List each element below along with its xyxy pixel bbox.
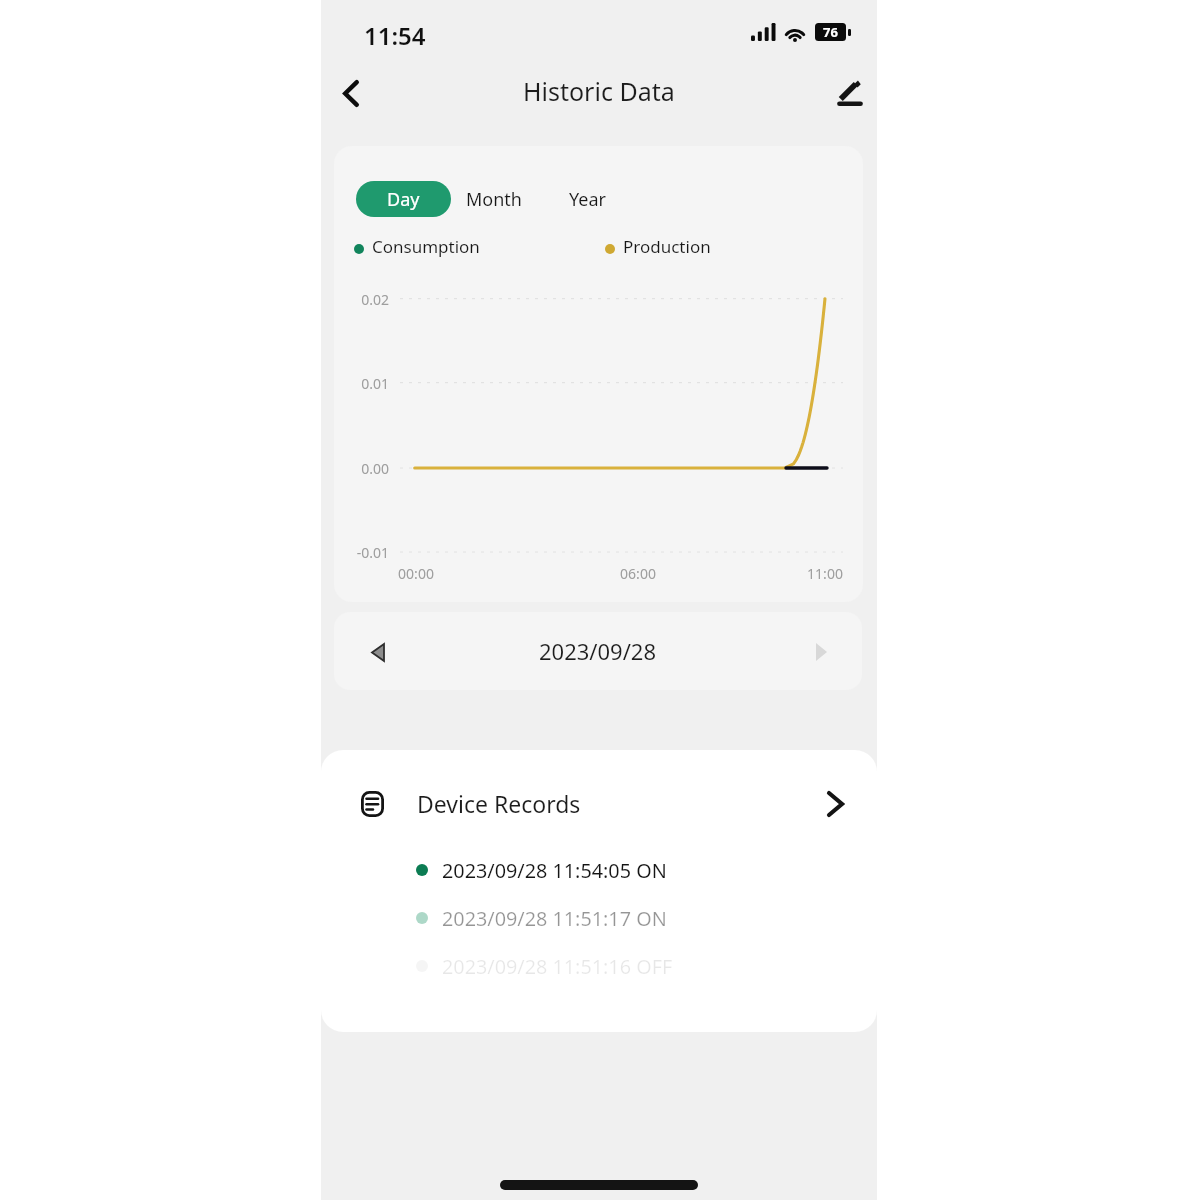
staticText: Production — [623, 235, 711, 258]
staticText: 2023/09/28 11:54:05 ON — [442, 857, 667, 884]
staticText: 0.01 — [341, 374, 389, 393]
button[interactable]: 2023/09/28 11:54:05 ON — [321, 846, 877, 894]
staticText: 11:54 — [364, 19, 426, 52]
staticText: 0.00 — [341, 459, 389, 478]
button[interactable]: Year — [559, 181, 615, 217]
staticText: 2023/09/28 11:51:17 ON — [442, 905, 667, 932]
staticText: 2023/09/28 — [539, 636, 657, 666]
button[interactable]: 2023/09/28 11:51:16 OFF — [321, 942, 877, 990]
staticText: 0.02 — [341, 290, 389, 309]
button[interactable]: Edit — [828, 70, 872, 114]
staticText: 11:00 — [795, 564, 855, 583]
staticText: 2023/09/28 11:51:16 OFF — [442, 953, 673, 980]
button[interactable]: Month — [463, 181, 525, 217]
button[interactable]: Back — [329, 71, 373, 115]
button[interactable]: Device Records — [321, 772, 877, 836]
button[interactable]: 2023/09/28 11:51:17 ON — [321, 894, 877, 942]
staticText: -0.01 — [341, 543, 389, 562]
staticText: 06:00 — [608, 564, 668, 583]
staticText: Consumption — [372, 235, 480, 258]
staticText: Day — [387, 187, 420, 212]
staticText: Historic Data — [523, 74, 675, 108]
staticText: Device Records — [417, 788, 581, 819]
button[interactable]: Previous day — [358, 632, 398, 672]
staticText: Year — [569, 187, 606, 212]
staticText: Month — [466, 187, 522, 212]
button[interactable]: Day — [356, 181, 451, 217]
button[interactable]: Next day — [801, 632, 841, 672]
staticText: 76 — [823, 23, 838, 41]
staticText: 00:00 — [386, 564, 446, 583]
